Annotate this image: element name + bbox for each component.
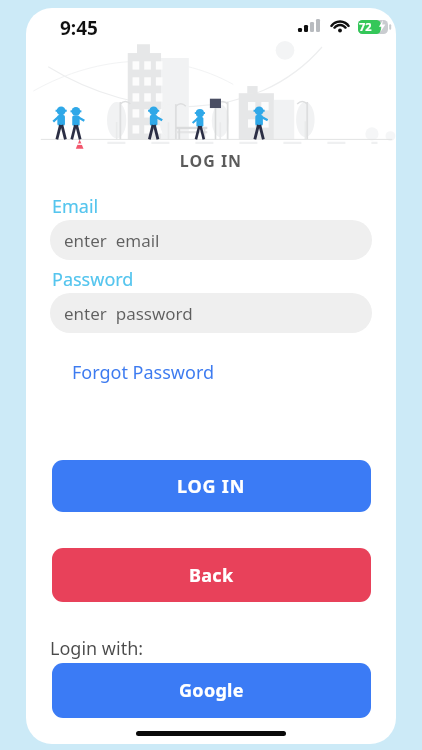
staticText: Password: [52, 267, 134, 292]
staticText: LOG IN: [26, 150, 396, 172]
staticText: Google: [179, 678, 244, 703]
staticText: enter email: [64, 229, 160, 252]
button[interactable]: Forgot Password: [68, 358, 219, 387]
staticText: 9:45: [60, 15, 98, 41]
staticText: LOG IN: [177, 474, 246, 499]
button[interactable]: Back: [52, 548, 371, 602]
staticText: Login with:: [50, 636, 144, 661]
button[interactable]: enter email: [50, 220, 372, 260]
staticText: Forgot Password: [72, 360, 215, 385]
button[interactable]: LOG IN: [52, 460, 371, 512]
staticText: Back: [189, 563, 234, 588]
button[interactable]: Google: [52, 663, 371, 718]
staticText: Email: [52, 194, 99, 219]
button[interactable]: enter password: [50, 293, 372, 333]
staticText: enter password: [64, 302, 193, 325]
staticText: 72: [359, 19, 372, 34]
